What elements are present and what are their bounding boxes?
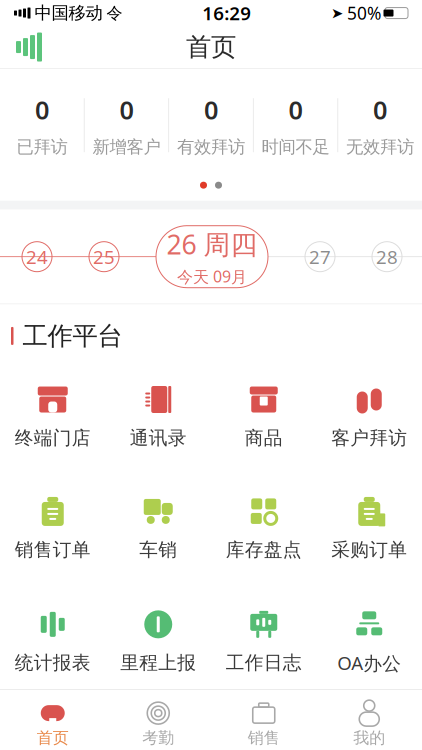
staticText: 销售订单 [15,538,91,561]
staticText: 商品 [245,426,283,449]
staticText: 库存盘点 [226,538,302,561]
button[interactable]: 商品 [211,377,316,455]
staticText: 26 周四 [166,226,257,262]
staticText: OA办公 [337,650,401,675]
staticText: 0 [288,93,302,126]
button[interactable]: 首页 [0,696,105,748]
staticText: 通讯录 [130,426,187,449]
staticText: 考勤 [142,728,174,748]
button[interactable]: 客户拜访 [316,377,422,455]
button[interactable]: 终端门店 [0,377,105,455]
staticText: 有效拜访 [177,136,245,158]
button[interactable]: 里程上报 [105,602,211,680]
staticText: 今天 09月 [177,266,247,287]
staticText: 0 [204,93,218,126]
button[interactable]: 我的 [316,696,422,748]
staticText: 工作日志 [226,651,302,674]
staticText: 25 [93,244,115,269]
button[interactable]: 考勤 [105,696,211,748]
button[interactable]: Logo [14,32,44,62]
staticText: 里程上报 [120,651,196,674]
button[interactable]: 通讯录 [105,377,211,455]
staticText: 无效拜访 [346,136,414,158]
button[interactable]: 销售 [211,696,316,748]
staticText: 首页 [186,31,236,63]
button[interactable]: 统计报表 [0,602,105,680]
staticText: 16:29 [202,1,251,25]
staticText: 24 [26,244,48,269]
button[interactable]: OA办公 [316,601,422,681]
button[interactable]: 车销 [105,489,211,567]
staticText: 新增客户 [92,136,160,158]
staticText: 首页 [37,728,69,748]
staticText: 统计报表 [15,651,91,674]
staticText: 令 [106,3,122,23]
staticText: 0 [35,93,49,126]
staticText: 客户拜访 [331,426,407,449]
staticText: ➤ [331,5,343,21]
staticText: 0 [373,93,387,126]
staticText: 工作平台 [22,320,122,351]
button[interactable]: 工作日志 [211,602,316,680]
staticText: 终端门店 [15,426,91,449]
button[interactable]: 销售订单 [0,489,105,567]
staticText: 0 [119,93,133,126]
button[interactable]: 库存盘点 [211,489,316,567]
staticText: 已拜访 [16,136,67,158]
staticText: 28 [376,244,398,269]
staticText: 50% [347,1,381,24]
staticText: 时间不足 [261,136,329,158]
staticText: 销售 [248,728,280,748]
button[interactable]: 采购订单 [316,489,422,567]
staticText: 中国移动 [34,2,102,24]
staticText: 车销 [139,538,177,561]
staticText: 采购订单 [331,538,407,561]
staticText: 我的 [353,728,385,748]
staticText: 27 [309,244,331,269]
